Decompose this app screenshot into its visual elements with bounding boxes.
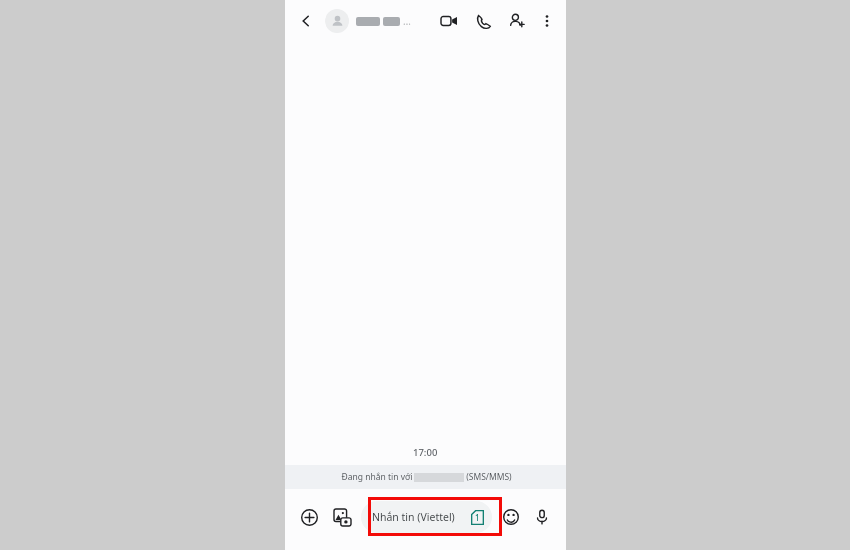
staticText: 17:00	[413, 446, 438, 459]
staticText: Nhắn tin (Viettel)	[372, 510, 455, 524]
button[interactable]: Back	[291, 6, 321, 36]
button[interactable]: …	[325, 6, 411, 36]
button[interactable]: Call	[469, 7, 497, 35]
staticText: 1	[475, 512, 480, 523]
staticText: Đang nhắn tin với	[340, 471, 414, 483]
button[interactable]: Emoji	[496, 502, 526, 532]
button[interactable]: More options	[534, 8, 560, 34]
button[interactable]: Send photo	[327, 502, 357, 532]
button[interactable]: Video call	[435, 7, 463, 35]
button[interactable]: Voice message	[527, 502, 557, 532]
staticText: (SMS/MMS)	[464, 471, 512, 483]
button[interactable]: Nhắn tin (Viettel)	[361, 501, 492, 533]
staticText: …	[403, 14, 411, 28]
button[interactable]: Add attachment	[294, 502, 324, 532]
button[interactable]: Add person	[503, 7, 531, 35]
